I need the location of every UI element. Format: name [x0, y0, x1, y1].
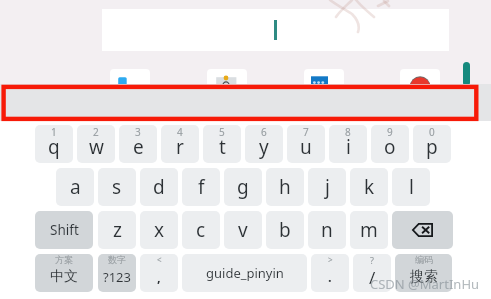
staticText: Shift — [50, 221, 79, 239]
staticText: y — [259, 134, 269, 160]
staticText: a — [70, 174, 81, 200]
button[interactable]: k — [350, 168, 388, 206]
button[interactable]: Shift — [35, 211, 93, 249]
staticText: < — [157, 254, 162, 265]
button[interactable]: m — [350, 211, 388, 249]
button[interactable]: v — [224, 211, 262, 249]
button[interactable]: 7 — [287, 125, 325, 163]
button[interactable]: 9 — [371, 125, 409, 163]
staticText: d — [153, 174, 165, 200]
staticText: 3 — [135, 125, 141, 139]
button[interactable]: Backspace — [392, 211, 453, 249]
staticText: 9 — [387, 125, 393, 139]
staticText: 5 — [219, 125, 225, 139]
staticText: b — [279, 217, 291, 243]
button[interactable]: App shortcut — [304, 69, 344, 103]
staticText: u — [300, 134, 312, 160]
button[interactable] — [0, 84, 491, 121]
staticText: v — [238, 217, 248, 243]
staticText: CSDN @MartInHu — [370, 275, 480, 293]
button[interactable]: App shortcut — [110, 69, 150, 103]
staticText: 数字 — [108, 254, 126, 265]
button[interactable]: z — [98, 211, 136, 249]
button[interactable]: c — [182, 211, 220, 249]
staticText: t — [219, 134, 226, 160]
button[interactable]: n — [308, 211, 346, 249]
staticText: h — [279, 174, 291, 200]
staticText: k — [364, 174, 375, 200]
staticText: ? — [370, 254, 374, 266]
staticText: s — [112, 174, 122, 200]
staticText: w — [89, 134, 104, 160]
staticText: 6 — [261, 125, 267, 139]
staticText: > — [328, 254, 333, 265]
staticText: 方案 — [55, 254, 73, 265]
staticText: guide_pinyin — [206, 264, 284, 282]
button[interactable]: g — [224, 168, 262, 206]
staticText: g — [237, 174, 249, 200]
button[interactable]: ? — [353, 254, 391, 292]
staticText: q — [48, 134, 60, 160]
staticText: r — [176, 134, 184, 160]
button[interactable]: 3 — [119, 125, 157, 163]
staticText: 4 — [177, 125, 183, 139]
button[interactable]: f — [182, 168, 220, 206]
button[interactable]: l — [392, 168, 430, 206]
button[interactable]: 4 — [161, 125, 199, 163]
button[interactable]: 1 — [35, 125, 73, 163]
staticText: j — [325, 174, 330, 200]
staticText: f — [198, 174, 205, 200]
button[interactable]: 5 — [203, 125, 241, 163]
staticText: c — [196, 217, 206, 243]
button[interactable]: 方案 — [35, 254, 93, 292]
staticText: , — [157, 268, 161, 286]
staticText: / — [369, 266, 376, 289]
button[interactable]: d — [140, 168, 178, 206]
button[interactable]: 编码 — [395, 254, 452, 292]
button[interactable]: 2 — [77, 125, 115, 163]
button[interactable]: 数字 — [98, 254, 136, 292]
staticText: . — [328, 268, 332, 286]
staticText: 2 — [93, 125, 99, 139]
staticText: o — [384, 134, 396, 160]
button[interactable]: > — [311, 254, 349, 292]
staticText: l — [409, 174, 414, 200]
button[interactable]: App shortcut — [207, 69, 247, 103]
staticText: m — [360, 217, 378, 243]
staticText: 7 — [303, 125, 309, 139]
button[interactable]: 6 — [245, 125, 283, 163]
staticText: ?123 — [103, 268, 131, 286]
button[interactable]: j — [308, 168, 346, 206]
staticText: n — [321, 217, 333, 243]
staticText: x — [154, 217, 165, 243]
staticText: 搜索 — [410, 268, 438, 286]
staticText: p — [426, 134, 438, 160]
staticText: 8 — [345, 125, 351, 139]
button[interactable]: a — [56, 168, 94, 206]
button[interactable] — [102, 9, 449, 51]
staticText: 中文 — [50, 268, 78, 286]
staticText: 编码 — [415, 254, 433, 265]
button[interactable]: App shortcut — [400, 69, 440, 103]
button[interactable]: 0 — [413, 125, 451, 163]
button[interactable]: x — [140, 211, 178, 249]
staticText: i — [346, 134, 351, 160]
button[interactable]: s — [98, 168, 136, 206]
button[interactable]: guide_pinyin — [182, 254, 307, 292]
button[interactable]: b — [266, 211, 304, 249]
button[interactable]: 8 — [329, 125, 367, 163]
staticText: e — [133, 134, 144, 160]
staticText: 0 — [429, 125, 435, 139]
staticText: z — [113, 217, 122, 243]
staticText: 1 — [51, 125, 57, 139]
button[interactable]: h — [266, 168, 304, 206]
button[interactable]: < — [140, 254, 178, 292]
